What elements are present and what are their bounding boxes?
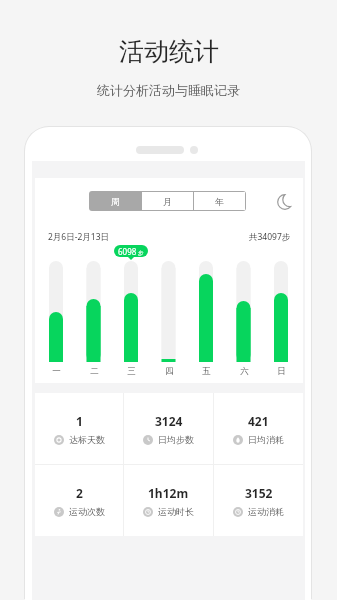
staticText: 运动次数 bbox=[69, 506, 105, 517]
staticText: 日均消耗 bbox=[248, 434, 284, 445]
button[interactable]: 3124 bbox=[124, 393, 213, 464]
staticText: 月 bbox=[163, 196, 172, 207]
button[interactable]: 2 bbox=[35, 465, 123, 536]
staticText: 四 bbox=[165, 366, 174, 377]
staticText: 统计分析活动与睡眠记录 bbox=[97, 82, 240, 98]
staticText: 五 bbox=[202, 366, 211, 377]
staticText: 1 bbox=[76, 413, 83, 429]
staticText: 3152 bbox=[245, 485, 273, 501]
button[interactable]: 1h12m bbox=[124, 465, 213, 536]
staticText: 活动统计 bbox=[119, 36, 219, 67]
staticText: 二 bbox=[90, 366, 99, 377]
staticText: 三 bbox=[127, 366, 136, 377]
staticText: 运动时长 bbox=[158, 506, 194, 517]
staticText: 一 bbox=[52, 366, 61, 377]
staticText: 2 bbox=[76, 485, 83, 501]
staticText: 421 bbox=[248, 413, 269, 429]
staticText: 六 bbox=[240, 366, 249, 377]
staticText: 日 bbox=[277, 366, 286, 377]
button[interactable]: 421 bbox=[214, 393, 303, 464]
staticText: 2月6日-2月13日 bbox=[48, 231, 110, 243]
button[interactable]: 周 bbox=[90, 192, 141, 210]
staticText: 步 bbox=[138, 250, 144, 257]
staticText: 6098 bbox=[118, 246, 137, 257]
button[interactable]: 1 bbox=[35, 393, 123, 464]
staticText: 年 bbox=[215, 196, 224, 207]
staticText: 日均步数 bbox=[158, 434, 194, 445]
staticText: 共34097步 bbox=[249, 231, 291, 243]
button[interactable]: 3152 bbox=[214, 465, 303, 536]
button[interactable]: 年 bbox=[194, 192, 245, 210]
staticText: 1h12m bbox=[148, 485, 189, 501]
staticText: 运动消耗 bbox=[248, 506, 284, 517]
staticText: 周 bbox=[111, 196, 120, 207]
button[interactable]: Sleep data bbox=[268, 186, 294, 212]
button[interactable]: 月 bbox=[142, 192, 193, 210]
staticText: 达标天数 bbox=[69, 434, 105, 445]
staticText: 3124 bbox=[155, 413, 183, 429]
